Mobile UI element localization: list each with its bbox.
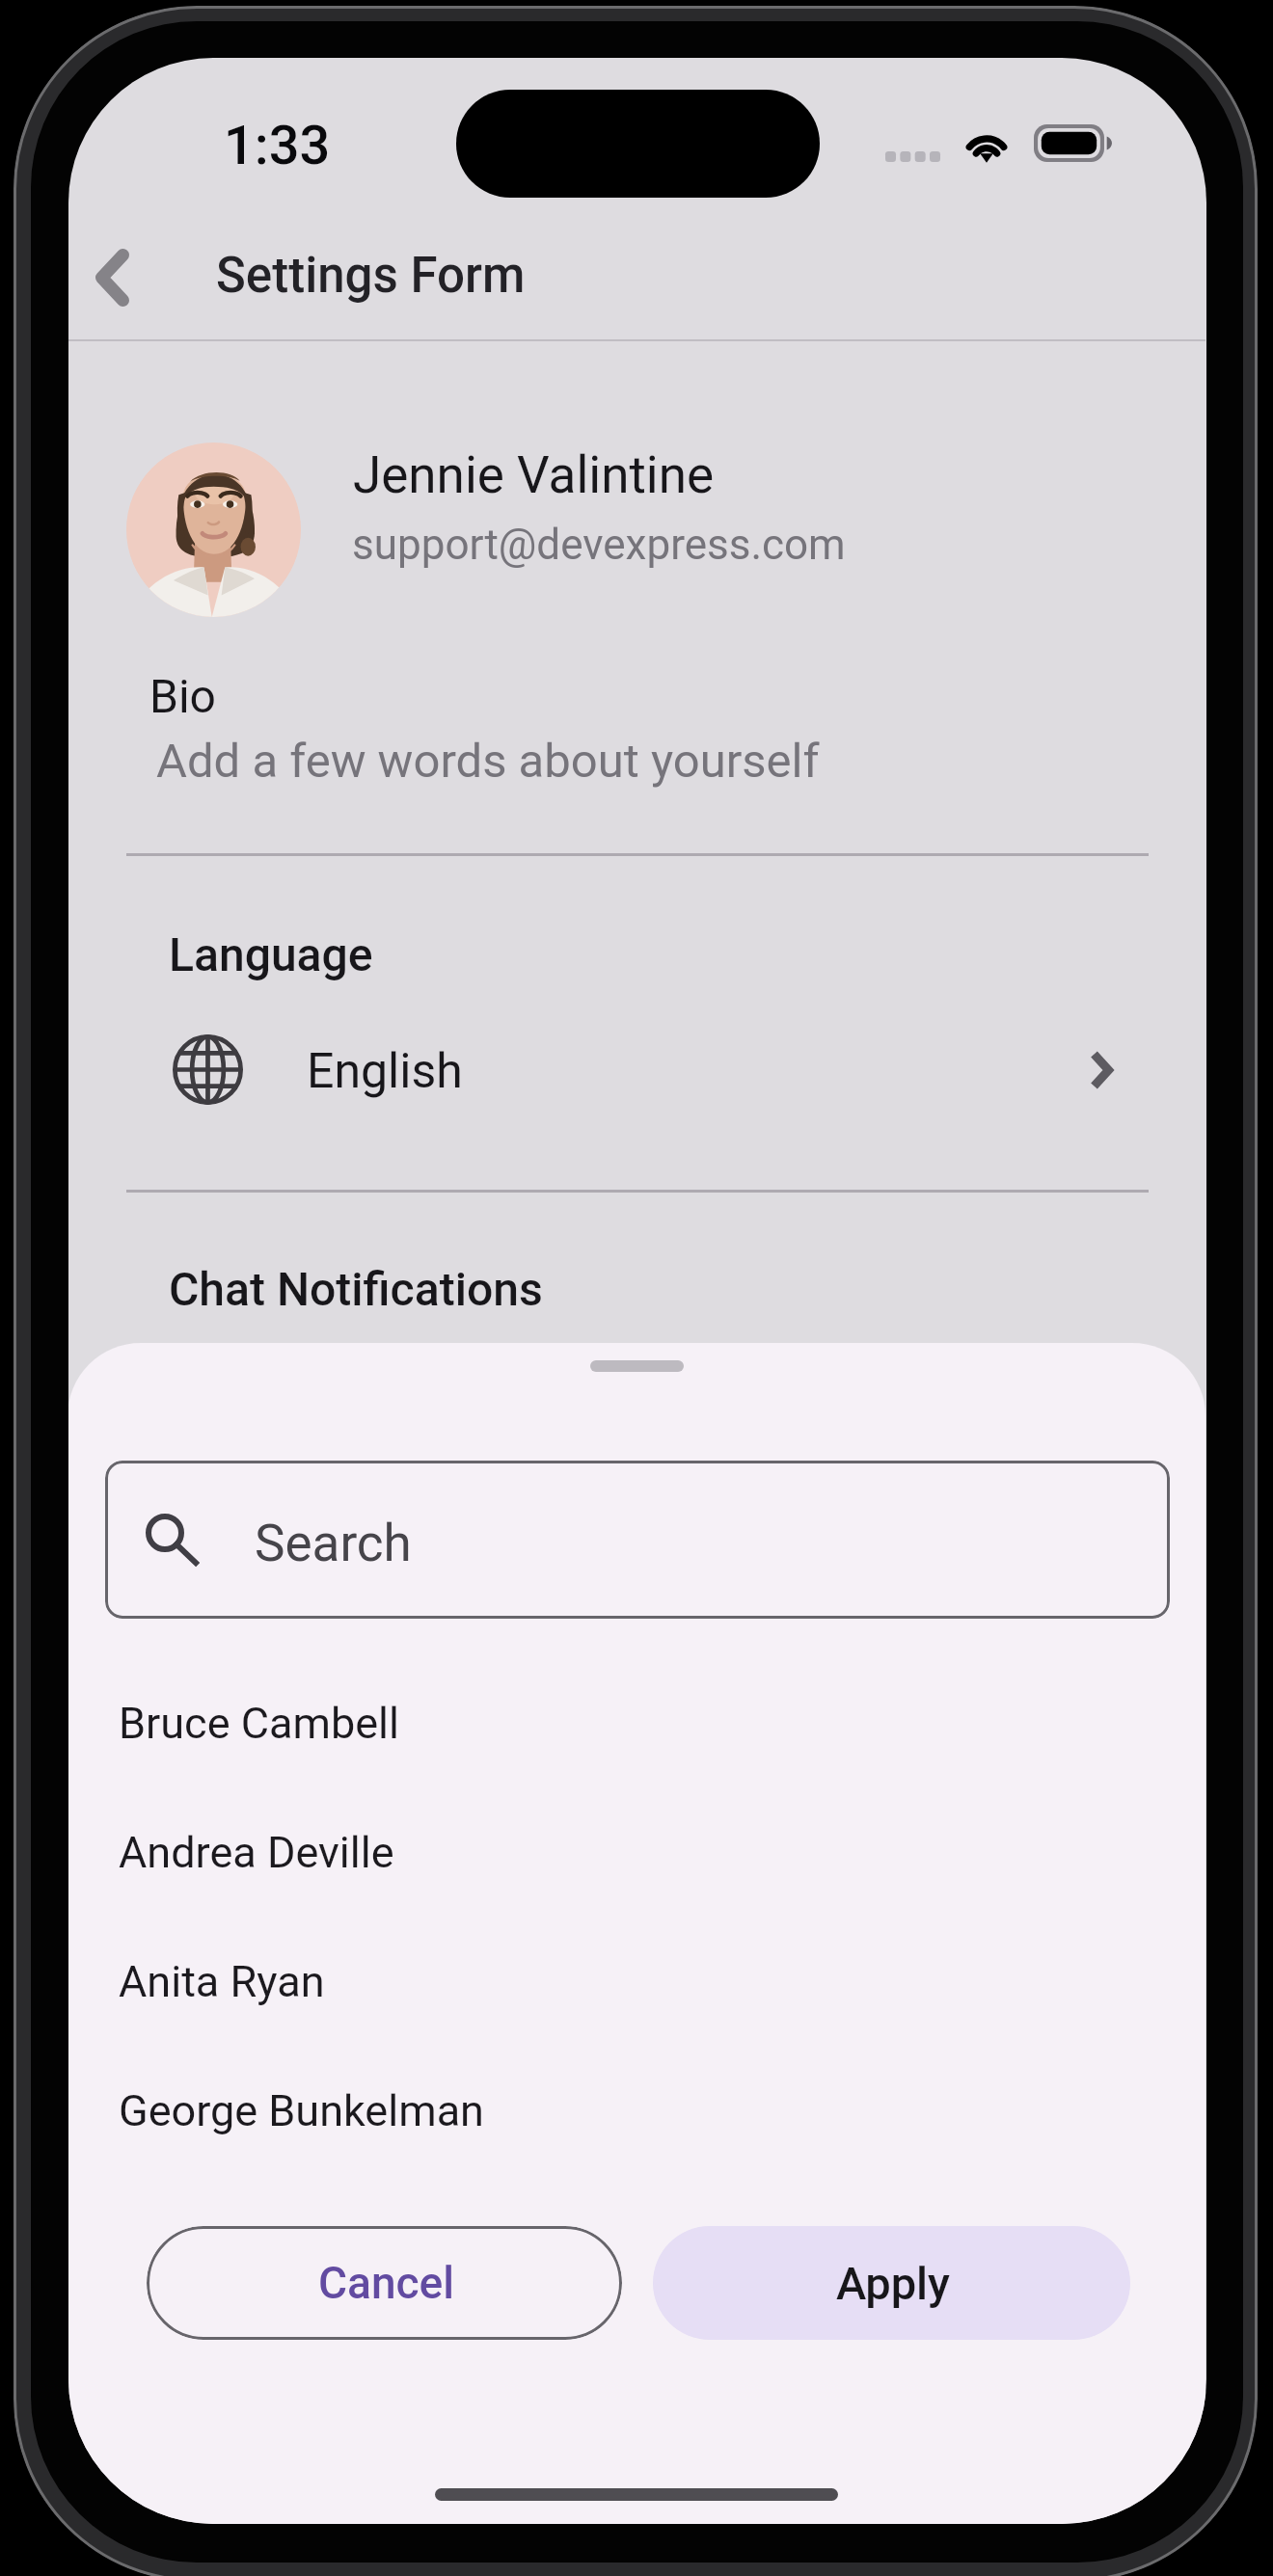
button[interactable]: Andrea Deville xyxy=(68,1787,1205,1917)
button[interactable]: Anita Ryan xyxy=(68,1917,1205,2046)
staticText: George Bunkelman xyxy=(119,2085,484,2136)
staticText: Settings Form xyxy=(216,247,526,305)
staticText: 1:33 xyxy=(224,114,331,177)
staticText: Apply xyxy=(836,2257,951,2310)
staticText: support@devexpress.com xyxy=(352,520,846,570)
button[interactable]: Cancel xyxy=(147,2226,622,2340)
staticText: Anita Ryan xyxy=(119,1956,325,2007)
staticText: Search xyxy=(255,1514,412,1573)
staticText: Cancel xyxy=(318,2257,455,2309)
staticText: Add a few words about yourself xyxy=(156,734,820,789)
staticText: Bio xyxy=(149,669,216,723)
button[interactable]: Apply xyxy=(653,2226,1130,2340)
button[interactable]: English xyxy=(68,1020,1205,1120)
button[interactable]: Bruce Cambell xyxy=(68,1658,1205,1787)
staticText: Chat Notifications xyxy=(169,1262,543,1316)
staticText: Jennie Valintine xyxy=(353,445,715,505)
button[interactable]: Search xyxy=(105,1461,1170,1619)
staticText: Andrea Deville xyxy=(119,1827,394,1878)
staticText: Bruce Cambell xyxy=(119,1698,399,1749)
button[interactable]: George Bunkelman xyxy=(68,2046,1205,2175)
button[interactable]: Back xyxy=(68,220,157,335)
staticText: Language xyxy=(169,927,373,981)
staticText: English xyxy=(307,1043,463,1100)
